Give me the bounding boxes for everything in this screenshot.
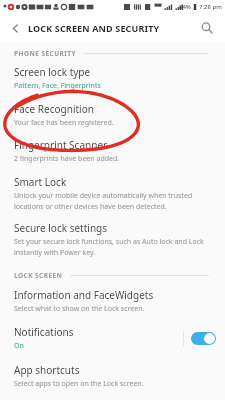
staticText: Select what to show on the Lock screen. bbox=[14, 304, 145, 314]
staticText: Secure lock settings bbox=[14, 221, 107, 235]
staticText: Set your secure lock functions, such as … bbox=[14, 237, 211, 257]
staticText: Your face has been registered. bbox=[14, 118, 114, 128]
staticText: Notifications bbox=[14, 325, 74, 339]
button[interactable]: Notifications bbox=[0, 325, 225, 351]
staticText: Smart Lock bbox=[14, 175, 67, 189]
button[interactable]: Screen lock type bbox=[0, 65, 225, 91]
staticText: Fingerprint Scanner bbox=[14, 138, 108, 152]
button[interactable]: Secure lock settings bbox=[0, 221, 225, 257]
staticText: 84% bbox=[179, 3, 191, 11]
button[interactable]: Smart Lock bbox=[0, 175, 225, 211]
staticText: LOCK SCREEN AND SECURITY bbox=[28, 22, 160, 34]
staticText: Information and FaceWidgets bbox=[14, 288, 154, 302]
button[interactable]: Fingerprint Scanner bbox=[0, 138, 225, 164]
staticText: App shortcuts bbox=[14, 363, 80, 377]
button[interactable]: Search bbox=[197, 18, 217, 38]
staticText: On bbox=[14, 341, 24, 351]
staticText: 2 fingerprints have been added. bbox=[14, 154, 120, 164]
staticText: Select apps to open on the Lock screen. bbox=[14, 379, 144, 389]
staticText: LOCK SCREEN bbox=[14, 271, 63, 280]
button[interactable]: Face Recognition bbox=[0, 102, 225, 128]
staticText: Face Recognition bbox=[14, 102, 94, 116]
button[interactable]: Information and FaceWidgets bbox=[0, 288, 225, 314]
staticText: PHONE SECURITY bbox=[14, 49, 76, 58]
button[interactable]: Back bbox=[5, 18, 25, 38]
staticText: Pattern, Face, Fingerprints bbox=[14, 81, 101, 91]
staticText: Unlock your mobile device automatically … bbox=[14, 191, 211, 211]
staticText: Screen lock type bbox=[14, 65, 91, 79]
button[interactable]: App shortcuts bbox=[0, 363, 225, 389]
staticText: 7:28 pm bbox=[199, 3, 222, 11]
button[interactable]: Notifications on bbox=[191, 332, 216, 345]
